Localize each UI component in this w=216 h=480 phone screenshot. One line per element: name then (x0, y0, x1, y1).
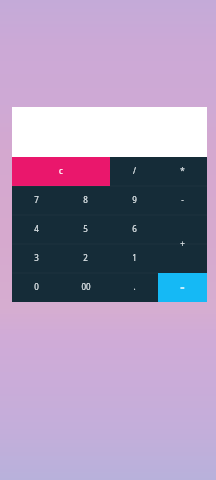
staticText: 1 (132, 252, 137, 263)
button[interactable]: 2 (61, 244, 110, 273)
button[interactable]: 1 (110, 244, 158, 273)
button[interactable]: 5 (61, 215, 110, 244)
staticText: 8 (83, 194, 88, 205)
button[interactable]: Subtract (158, 186, 207, 215)
staticText: 6 (132, 223, 137, 234)
staticText: + (180, 238, 185, 249)
button[interactable]: Divide (110, 157, 158, 186)
staticText: 2 (83, 252, 88, 263)
button[interactable]: Double zero (61, 273, 110, 302)
staticText: . (133, 281, 136, 292)
button[interactable]: 7 (12, 186, 61, 215)
staticText: 5 (83, 223, 88, 234)
button[interactable]: 4 (12, 215, 61, 244)
button[interactable]: 0 (12, 273, 61, 302)
staticText: c (59, 165, 63, 176)
button[interactable]: 3 (12, 244, 61, 273)
button[interactable]: Add (158, 215, 207, 273)
staticText: 7 (34, 194, 39, 205)
staticText: / (133, 165, 136, 176)
button[interactable]: Decimal point (110, 273, 158, 302)
staticText: 00 (81, 281, 91, 292)
button[interactable]: Multiply (158, 157, 207, 186)
staticText: - (181, 194, 184, 205)
button[interactable]: Equals (158, 273, 207, 302)
staticText: 9 (132, 194, 137, 205)
button[interactable]: Clear (12, 157, 110, 186)
button[interactable]: 8 (61, 186, 110, 215)
staticText: 4 (34, 223, 39, 234)
staticText: 0 (34, 281, 39, 292)
button[interactable]: 9 (110, 186, 158, 215)
staticText: * (180, 165, 185, 176)
button[interactable]: 6 (110, 215, 158, 244)
staticText: = (180, 282, 185, 292)
staticText: 3 (34, 252, 39, 263)
